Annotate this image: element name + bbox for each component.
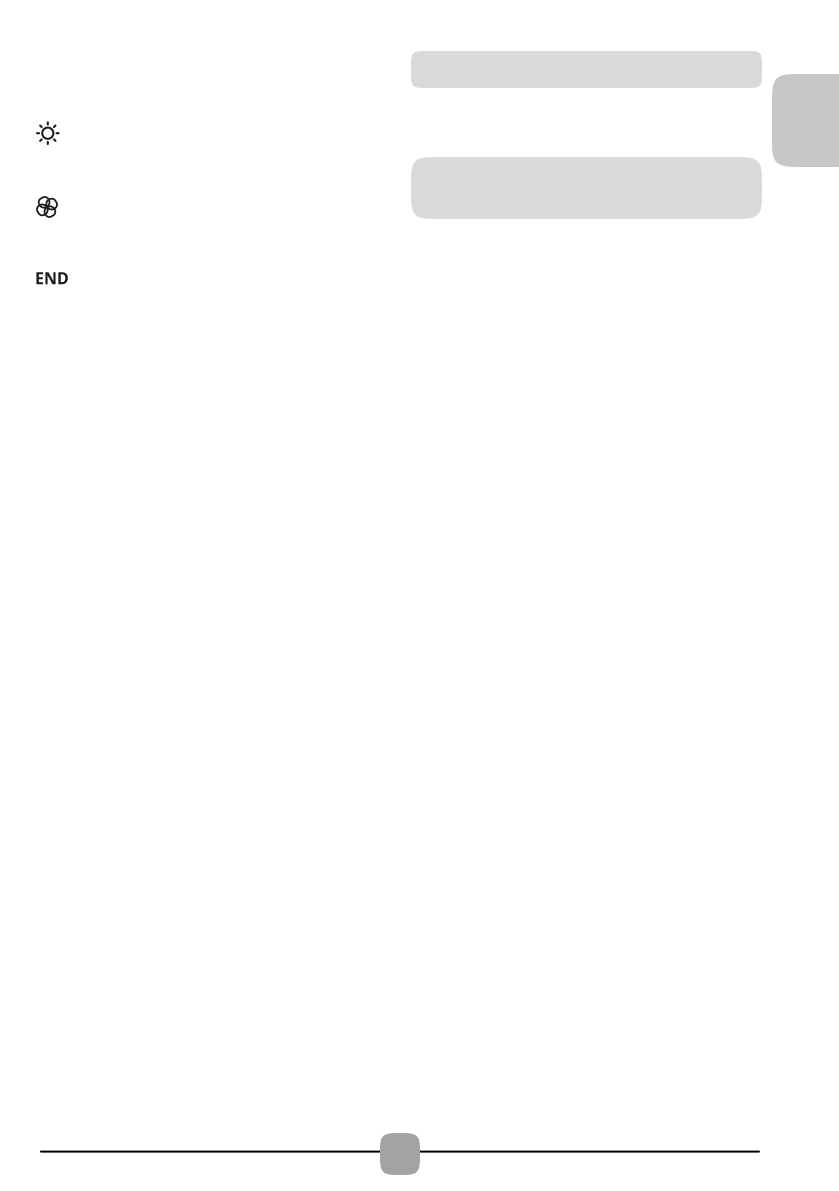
button[interactable]: Slider: [380, 1133, 420, 1175]
button[interactable]: Brightness: [36, 122, 59, 145]
button[interactable]: Card: [772, 74, 839, 167]
button[interactable]: Fan: [36, 196, 58, 218]
staticText: END: [35, 267, 69, 289]
button[interactable]: Content placeholder: [411, 157, 762, 219]
button[interactable]: END: [35, 267, 69, 289]
